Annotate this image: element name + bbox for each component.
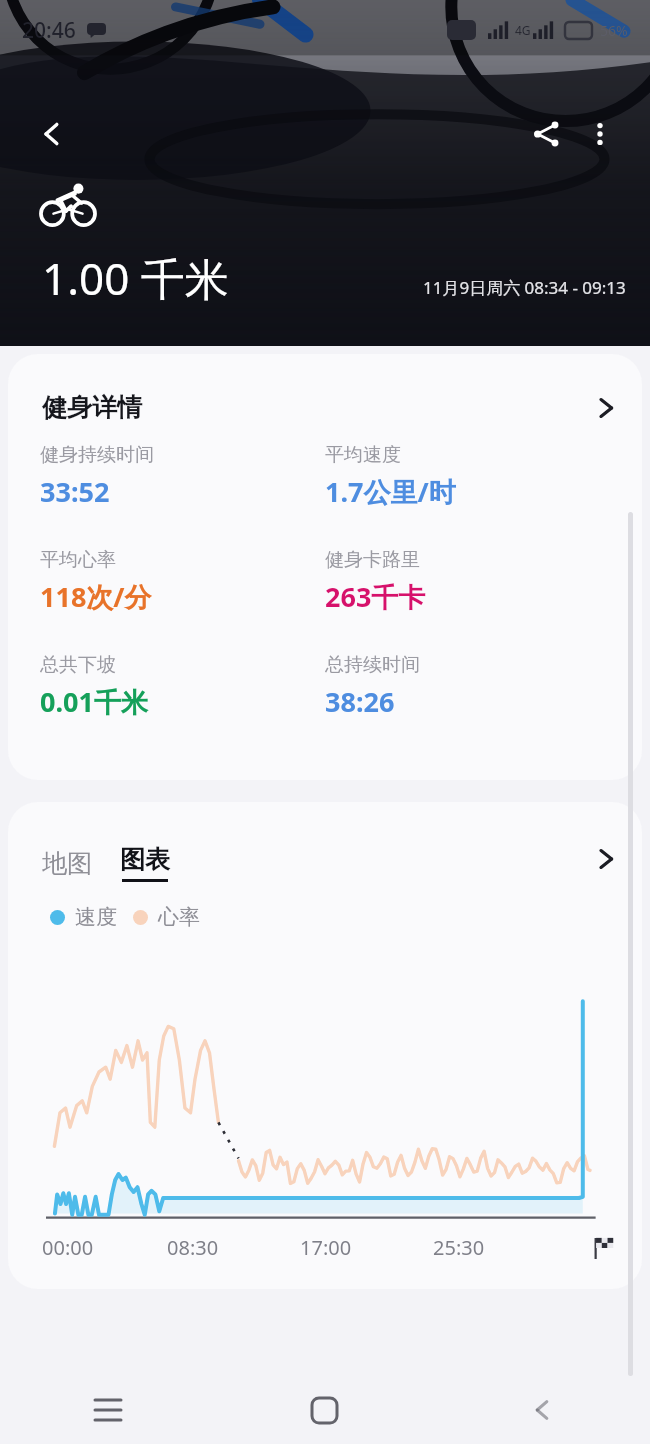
staticText: 总共下坡	[40, 653, 116, 677]
staticText: 25:30	[433, 1234, 485, 1261]
staticText: 17:00	[300, 1234, 352, 1261]
staticText: 地图	[42, 848, 92, 879]
staticText: 11月9日周六 08:34 - 09:13	[423, 276, 626, 299]
staticText: 00:00	[42, 1234, 94, 1261]
button[interactable]: 健身详情	[8, 354, 642, 443]
button[interactable]: More options	[574, 108, 626, 160]
staticText: 平均速度	[325, 443, 401, 467]
staticText: 38:26	[325, 683, 395, 720]
staticText: 健身详情	[42, 392, 142, 423]
button[interactable]: Home	[216, 1376, 433, 1444]
staticText: 118次/分	[40, 578, 152, 615]
button[interactable]: Recent apps	[0, 1376, 216, 1444]
staticText: 33:52	[40, 473, 110, 510]
staticText: 平均心率	[40, 548, 116, 572]
button[interactable]: Open chart	[596, 844, 616, 882]
staticText: 速度	[75, 904, 117, 930]
button[interactable]: Share	[520, 108, 572, 160]
staticText: 263千卡	[325, 578, 426, 615]
staticText: 心率	[158, 904, 200, 930]
staticText: 1.7公里/时	[325, 473, 456, 510]
staticText: 健身持续时间	[40, 443, 154, 467]
staticText: 1.00 千米	[42, 248, 229, 308]
button[interactable]: 图表	[120, 844, 170, 882]
staticText: 08:30	[167, 1234, 219, 1261]
staticText: 4G	[515, 22, 531, 38]
button[interactable]: Back	[433, 1376, 650, 1444]
button[interactable]: 地图	[42, 848, 92, 879]
button[interactable]: Back	[26, 108, 78, 160]
staticText: 图表	[120, 844, 170, 875]
staticText: 56%	[600, 21, 628, 40]
staticText: 健身卡路里	[325, 548, 420, 572]
staticText: 20:46	[22, 16, 76, 45]
staticText: 0.01千米	[40, 683, 148, 720]
staticText: 总持续时间	[325, 653, 420, 677]
